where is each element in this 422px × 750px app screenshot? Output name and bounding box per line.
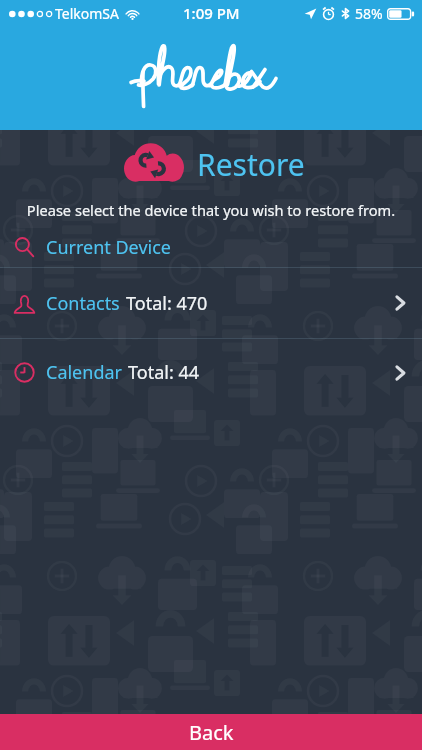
button[interactable]: Calendar: [0, 339, 422, 406]
button[interactable]: Current Device: [0, 228, 422, 267]
staticText: Contacts: [46, 291, 120, 316]
staticText: 1:09 PM: [183, 3, 240, 23]
staticText: Total: 470: [126, 291, 208, 316]
staticText: Current Device: [46, 235, 171, 260]
staticText: Restore: [197, 144, 305, 185]
staticText: Please select the device that you wish t…: [0, 200, 422, 220]
staticText: Back: [189, 719, 234, 746]
staticText: Calendar: [46, 360, 122, 385]
button[interactable]: Contacts: [0, 268, 422, 338]
staticText: TelkomSA: [55, 4, 119, 23]
staticText: 58%: [355, 4, 383, 23]
button[interactable]: Back: [0, 714, 422, 750]
staticText: Total: 44: [128, 360, 199, 385]
